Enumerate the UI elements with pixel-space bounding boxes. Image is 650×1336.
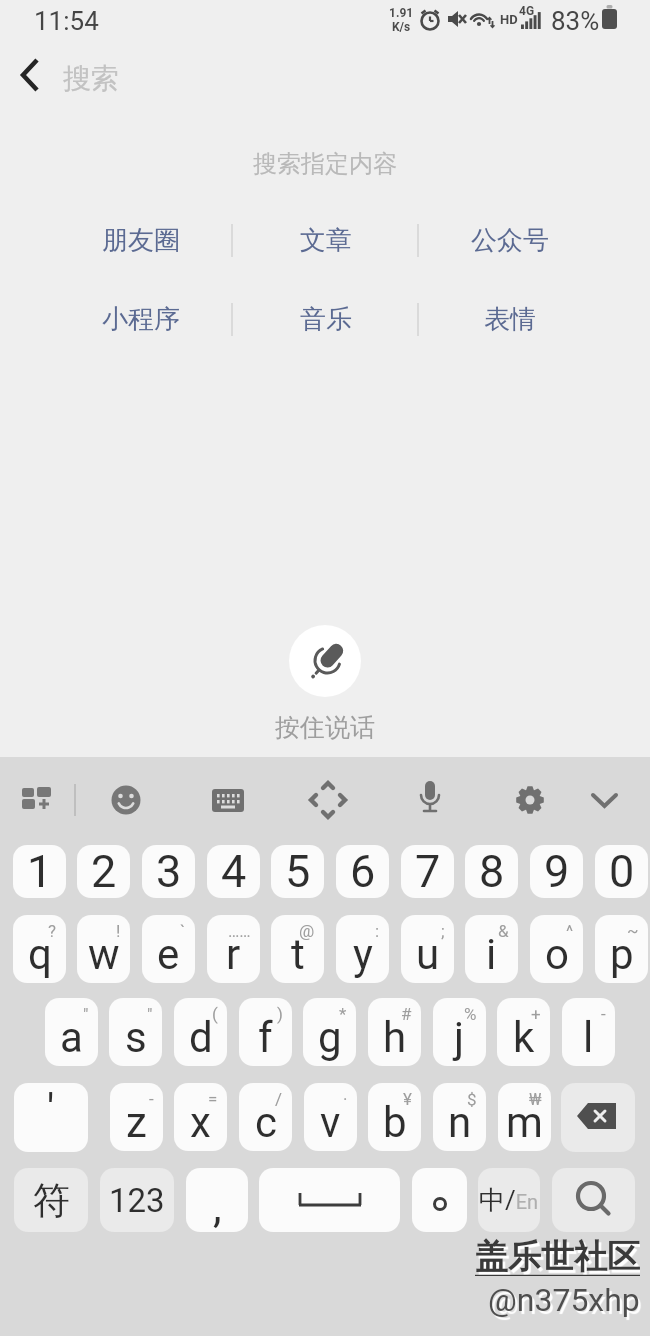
staticText: a bbox=[60, 1013, 83, 1062]
staticText: …… bbox=[228, 921, 251, 941]
button[interactable]: 音乐 bbox=[246, 297, 406, 341]
staticText: b bbox=[383, 1098, 407, 1147]
button[interactable] bbox=[561, 1083, 635, 1152]
staticText: ₩ bbox=[529, 1089, 542, 1109]
staticText: 3 bbox=[156, 845, 182, 898]
button[interactable] bbox=[552, 1168, 635, 1232]
button[interactable]: y bbox=[336, 915, 389, 983]
button[interactable]: f bbox=[239, 998, 292, 1066]
button[interactable]: 7 bbox=[401, 845, 454, 898]
button[interactable]: 3 bbox=[142, 845, 195, 898]
staticText: r bbox=[226, 930, 241, 979]
staticText: 5 bbox=[285, 845, 311, 898]
button[interactable]: m bbox=[498, 1083, 551, 1151]
staticText: h bbox=[383, 1013, 407, 1062]
button[interactable]: 朋友圈 bbox=[61, 218, 221, 262]
staticText: ) bbox=[277, 1004, 283, 1024]
button[interactable]: x bbox=[174, 1083, 227, 1151]
staticText: $ bbox=[467, 1089, 477, 1109]
button[interactable]: 5 bbox=[271, 845, 324, 898]
staticText: g bbox=[318, 1013, 342, 1062]
button[interactable] bbox=[289, 625, 361, 697]
staticText: 盖乐世社区 bbox=[475, 1236, 640, 1276]
button[interactable] bbox=[22, 787, 53, 813]
staticText: 文章 bbox=[300, 224, 352, 257]
staticText: " bbox=[147, 1004, 153, 1024]
staticText: # bbox=[401, 1004, 412, 1024]
staticText: 83% bbox=[551, 6, 600, 36]
button[interactable] bbox=[259, 1168, 400, 1232]
button[interactable] bbox=[419, 781, 441, 819]
button[interactable]: h bbox=[368, 998, 421, 1066]
button[interactable]: z bbox=[110, 1083, 163, 1151]
staticText: p bbox=[610, 930, 634, 979]
button[interactable]: 2 bbox=[77, 845, 130, 898]
staticText: v bbox=[320, 1098, 341, 1147]
button[interactable]: p bbox=[595, 915, 648, 983]
staticText: d bbox=[189, 1013, 213, 1062]
staticText: : bbox=[375, 921, 380, 941]
button[interactable] bbox=[111, 785, 141, 815]
button[interactable] bbox=[515, 785, 545, 815]
button[interactable]: w bbox=[77, 915, 130, 983]
button[interactable]: g bbox=[303, 998, 356, 1066]
button[interactable]: 0 bbox=[595, 845, 648, 898]
button[interactable] bbox=[591, 793, 618, 809]
button[interactable]: l bbox=[562, 998, 615, 1066]
staticText: K/s bbox=[392, 20, 411, 34]
button[interactable]: n bbox=[433, 1083, 486, 1151]
staticText: · bbox=[343, 1089, 348, 1109]
staticText: c bbox=[255, 1098, 277, 1147]
button[interactable]: 符 bbox=[14, 1168, 88, 1232]
button[interactable]: q bbox=[13, 915, 66, 983]
staticText: y bbox=[353, 930, 373, 979]
button[interactable]: k bbox=[497, 998, 550, 1066]
button[interactable]: 4 bbox=[207, 845, 260, 898]
staticText: 按住说话 bbox=[275, 712, 375, 743]
button[interactable]: , bbox=[186, 1168, 248, 1232]
staticText: u bbox=[416, 930, 440, 979]
button[interactable] bbox=[212, 789, 244, 812]
button[interactable]: i bbox=[465, 915, 518, 983]
staticText: n bbox=[448, 1098, 472, 1147]
button[interactable] bbox=[412, 1168, 467, 1232]
button[interactable]: 6 bbox=[336, 845, 389, 898]
button[interactable]: 公众号 bbox=[430, 218, 590, 262]
button[interactable] bbox=[10, 55, 54, 99]
button[interactable]: t bbox=[271, 915, 324, 983]
button[interactable]: 中/En bbox=[478, 1168, 540, 1232]
button[interactable]: d bbox=[174, 998, 227, 1066]
staticText: - bbox=[149, 1089, 154, 1109]
staticText: x bbox=[190, 1098, 211, 1147]
button[interactable]: o bbox=[530, 915, 583, 983]
button[interactable]: 小程序 bbox=[61, 297, 221, 341]
button[interactable]: 1 bbox=[13, 845, 66, 898]
button[interactable]: 8 bbox=[465, 845, 518, 898]
staticText: ( bbox=[212, 1004, 218, 1024]
staticText: 1.91 bbox=[389, 6, 414, 20]
staticText: m bbox=[506, 1098, 543, 1147]
button[interactable]: 9 bbox=[530, 845, 583, 898]
button[interactable]: 123 bbox=[100, 1168, 174, 1232]
button[interactable]: ' bbox=[14, 1083, 88, 1152]
staticText: - bbox=[601, 1004, 606, 1024]
button[interactable]: 文章 bbox=[246, 218, 406, 262]
staticText: q bbox=[28, 930, 52, 979]
staticText: 2 bbox=[91, 845, 117, 898]
button[interactable]: a bbox=[45, 998, 98, 1066]
button[interactable]: u bbox=[401, 915, 454, 983]
staticText: ' bbox=[47, 1085, 55, 1134]
button[interactable] bbox=[310, 782, 346, 818]
button[interactable]: e bbox=[142, 915, 195, 983]
button[interactable]: s bbox=[109, 998, 162, 1066]
staticText: o bbox=[545, 930, 569, 979]
button[interactable]: c bbox=[239, 1083, 292, 1151]
button[interactable]: j bbox=[433, 998, 486, 1066]
staticText: i bbox=[486, 930, 497, 979]
button[interactable]: v bbox=[304, 1083, 357, 1151]
staticText: 符 bbox=[33, 1177, 70, 1224]
button[interactable]: r bbox=[207, 915, 260, 983]
button[interactable]: 表情 bbox=[430, 297, 590, 341]
staticText: 9 bbox=[544, 845, 570, 898]
button[interactable]: b bbox=[368, 1083, 421, 1151]
